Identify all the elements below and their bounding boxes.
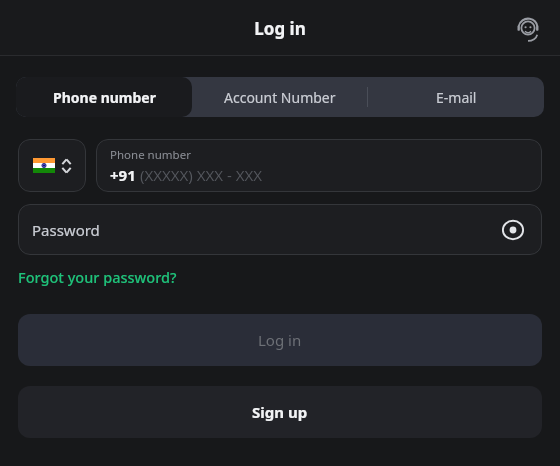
button[interactable]: Sign up (18, 386, 542, 438)
button[interactable]: Password (18, 204, 542, 255)
staticText: Phone number (53, 88, 156, 107)
button[interactable]: Log in (18, 314, 542, 366)
button[interactable]: Select country code (18, 139, 86, 192)
button[interactable]: Show password (498, 215, 528, 245)
button[interactable]: Phone number (16, 77, 192, 117)
button[interactable]: Phone number (96, 139, 542, 192)
button[interactable]: E-mail (368, 77, 544, 117)
staticText: E-mail (436, 88, 477, 107)
staticText: Log in (254, 17, 306, 40)
button[interactable]: Account Number (192, 77, 368, 117)
button[interactable]: Support (510, 10, 546, 46)
staticText: Phone number (110, 147, 191, 163)
staticText: +91 (110, 165, 136, 185)
staticText: Sign up (252, 402, 308, 422)
staticText: Account Number (224, 88, 336, 107)
staticText: Log in (258, 330, 302, 350)
staticText: (XXXXX) XXX - XXX (136, 165, 263, 185)
button[interactable]: Forgot your password? (18, 267, 177, 287)
staticText: Password (32, 220, 100, 240)
